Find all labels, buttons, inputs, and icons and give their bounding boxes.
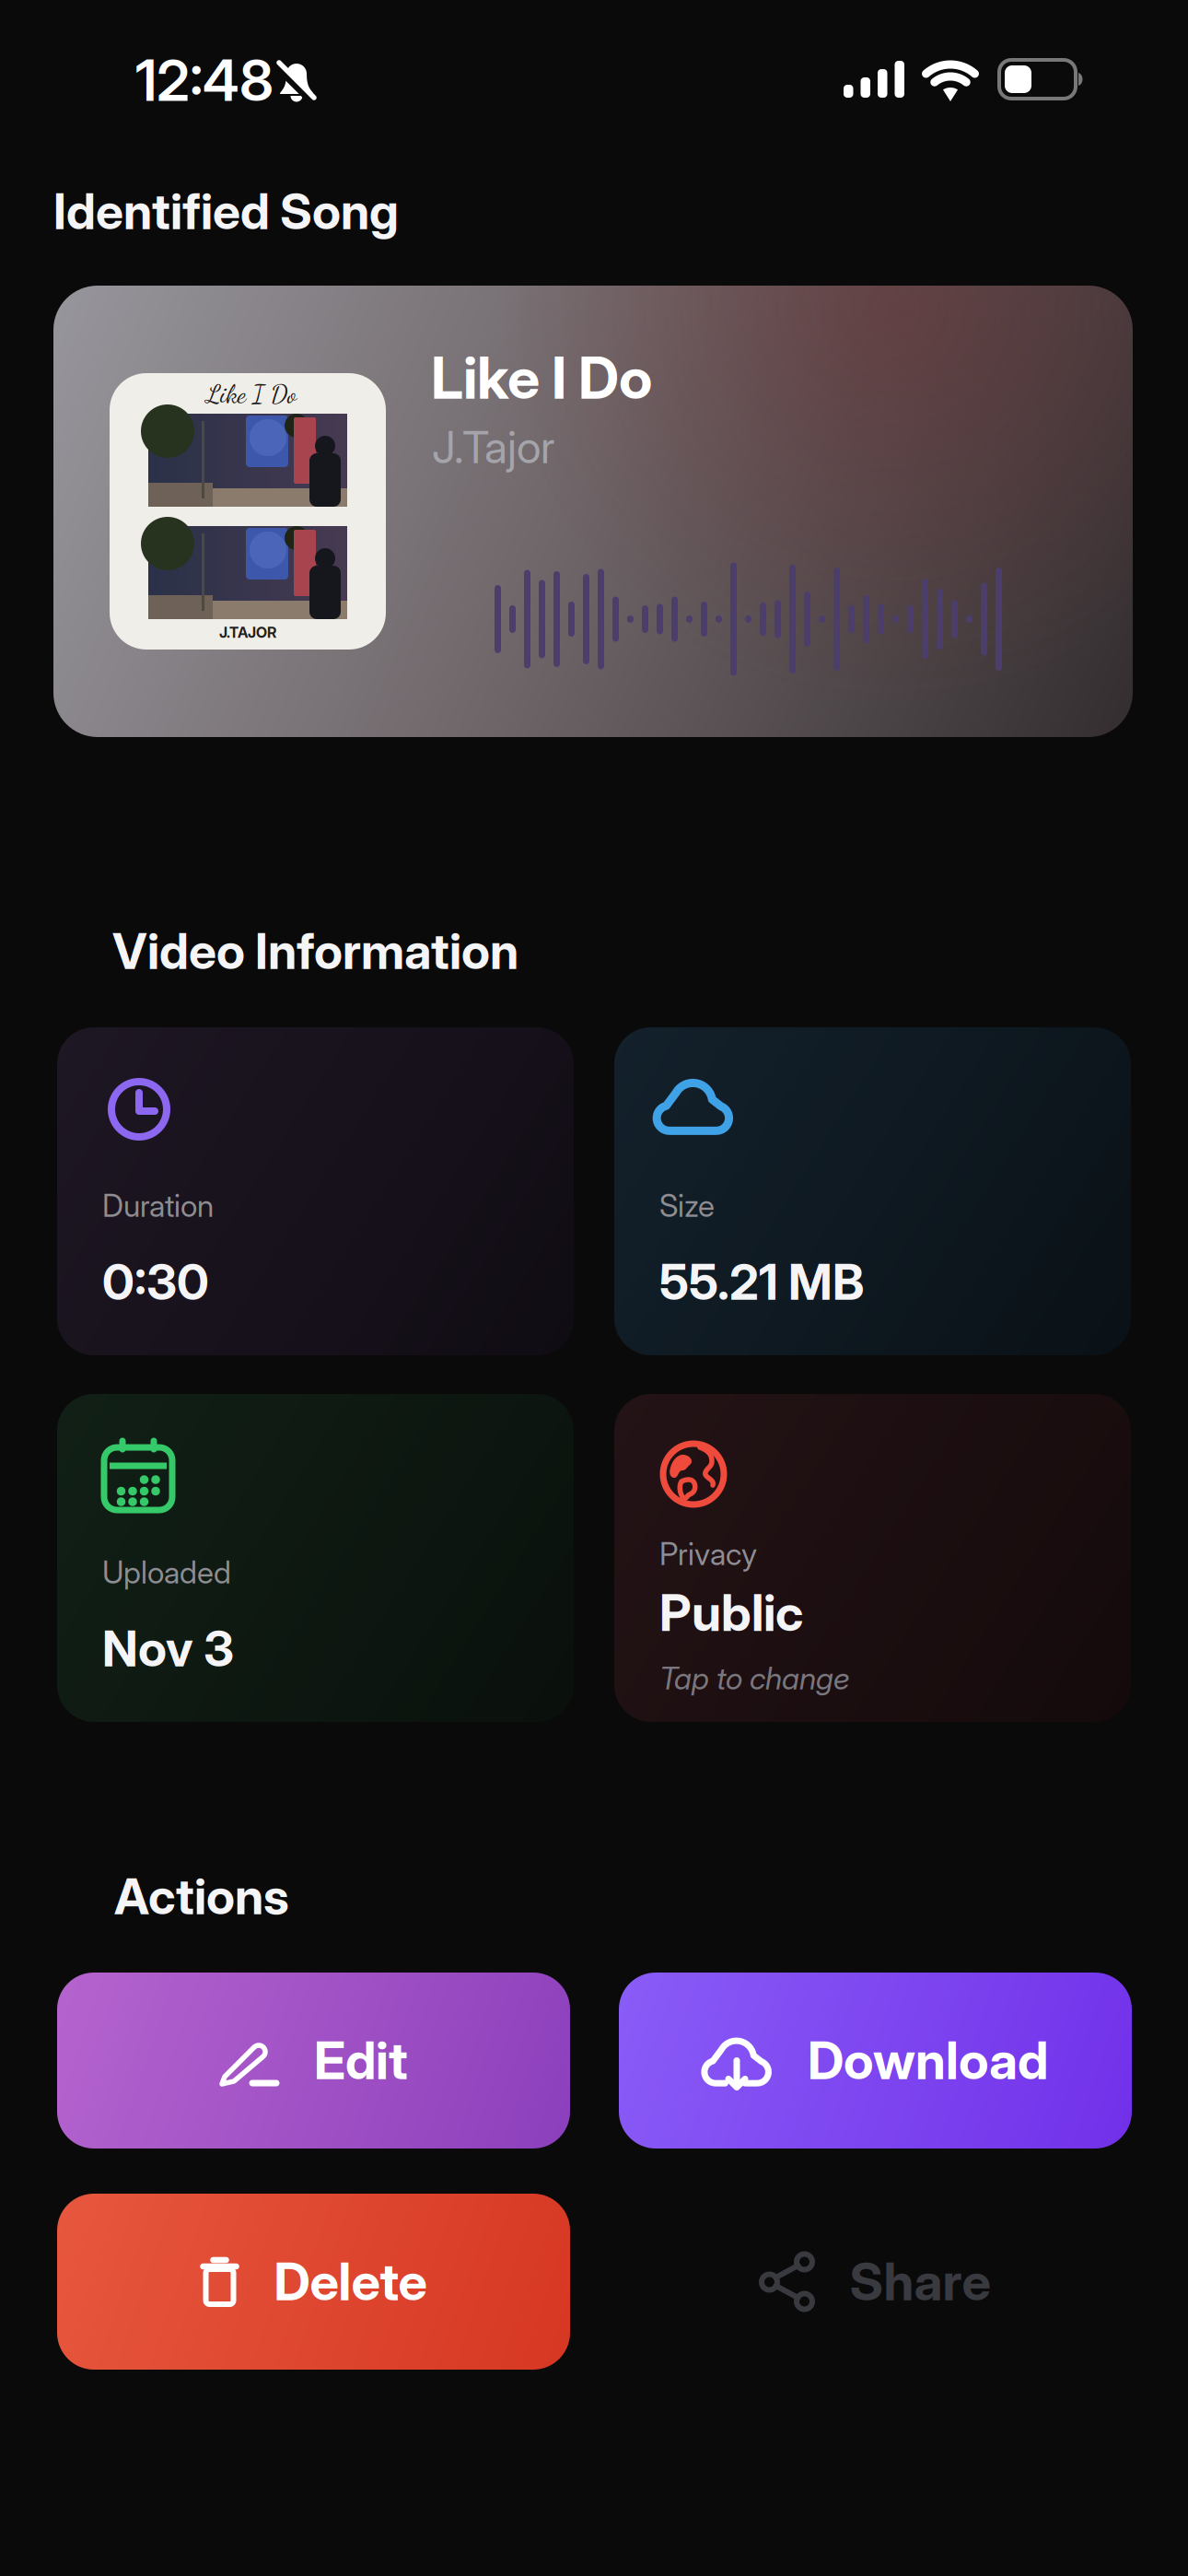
button[interactable]: Download bbox=[619, 1973, 1132, 2149]
staticText: Share bbox=[850, 2251, 990, 2312]
staticText: Public bbox=[659, 1583, 803, 1642]
staticText: Uploaded bbox=[102, 1554, 231, 1590]
staticText: J.TAJOR bbox=[219, 624, 276, 641]
staticText: Privacy bbox=[659, 1536, 757, 1572]
staticText: Like I Do bbox=[431, 344, 652, 412]
staticText: Actions bbox=[114, 1868, 289, 1925]
button[interactable]: Duration bbox=[57, 1027, 574, 1355]
staticText: Size bbox=[659, 1188, 715, 1224]
staticText: Edit bbox=[314, 2030, 408, 2091]
staticText: J.Tajor bbox=[432, 421, 554, 473]
staticText: Tap to change bbox=[659, 1660, 850, 1696]
staticText: Download bbox=[808, 2030, 1048, 2091]
button[interactable]: Size bbox=[614, 1027, 1131, 1355]
button[interactable]: Uploaded bbox=[57, 1394, 574, 1722]
button[interactable]: Delete bbox=[57, 2194, 570, 2370]
staticText: Identified Song bbox=[53, 182, 399, 240]
staticText: Video Information bbox=[112, 922, 518, 980]
staticText: Like I Do bbox=[206, 379, 297, 410]
button[interactable]: Edit bbox=[57, 1973, 570, 2149]
staticText: 0:30 bbox=[102, 1253, 209, 1311]
staticText: Duration bbox=[102, 1188, 214, 1224]
staticText: Delete bbox=[274, 2251, 427, 2312]
staticText: 12:48 bbox=[135, 47, 274, 114]
staticText: Nov 3 bbox=[102, 1620, 234, 1678]
staticText: 55.21 MB bbox=[659, 1253, 864, 1311]
button[interactable]: Share bbox=[619, 2194, 1132, 2370]
button[interactable]: Privacy bbox=[614, 1394, 1131, 1722]
